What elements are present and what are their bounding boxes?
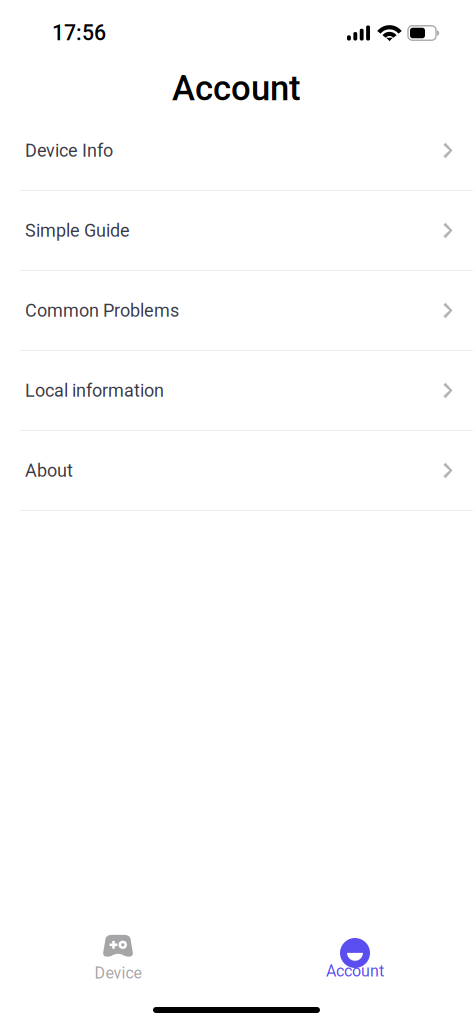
staticText: About bbox=[25, 460, 73, 481]
staticText: Device bbox=[94, 964, 141, 982]
staticText: Common Problems bbox=[25, 300, 179, 321]
button[interactable]: Device Info bbox=[0, 111, 473, 191]
button[interactable]: Account bbox=[295, 933, 415, 987]
staticText: Local information bbox=[25, 380, 164, 401]
staticText: Account bbox=[172, 68, 301, 109]
button[interactable]: Device bbox=[58, 933, 178, 987]
staticText: Device Info bbox=[25, 140, 113, 161]
button[interactable]: Common Problems bbox=[0, 271, 473, 351]
button[interactable]: About bbox=[0, 431, 473, 511]
staticText: Simple Guide bbox=[25, 220, 130, 241]
staticText: Account bbox=[326, 962, 384, 980]
button[interactable]: Simple Guide bbox=[0, 191, 473, 271]
staticText: 17:56 bbox=[52, 20, 106, 45]
button[interactable]: Local information bbox=[0, 351, 473, 431]
